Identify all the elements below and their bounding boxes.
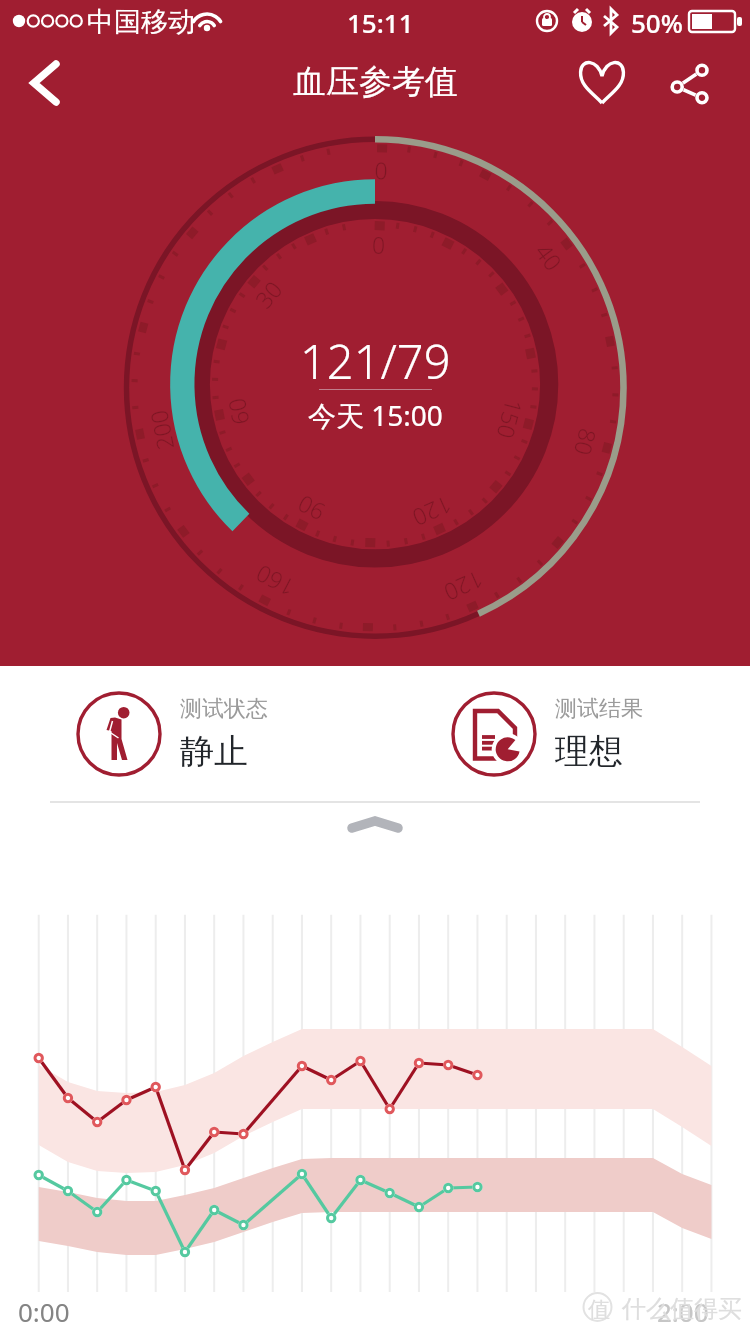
staticText: 测试状态	[180, 695, 268, 723]
staticText: 2:00	[657, 1294, 709, 1329]
button[interactable]: 测试结果	[451, 691, 643, 777]
staticText: 值	[588, 1296, 610, 1324]
staticText: 什么值得买	[622, 1294, 742, 1324]
staticText: 理想	[555, 730, 623, 773]
staticText: 血压参考值	[293, 61, 458, 103]
staticText: 121/79	[300, 329, 451, 393]
staticText: 测试结果	[555, 695, 643, 723]
button[interactable]: 测试状态	[76, 691, 268, 777]
button[interactable]: Collapse	[330, 806, 420, 846]
staticText: 中国移动	[87, 5, 195, 39]
staticText: 静止	[180, 730, 248, 773]
staticText: 15:11	[347, 5, 414, 40]
button[interactable]: Back	[8, 47, 80, 119]
button[interactable]: Favorite	[566, 48, 638, 120]
staticText: 今天 15:00	[308, 396, 443, 434]
staticText: 0:00	[18, 1294, 70, 1329]
button[interactable]: Share	[653, 48, 725, 120]
staticText: 50%	[631, 5, 683, 40]
